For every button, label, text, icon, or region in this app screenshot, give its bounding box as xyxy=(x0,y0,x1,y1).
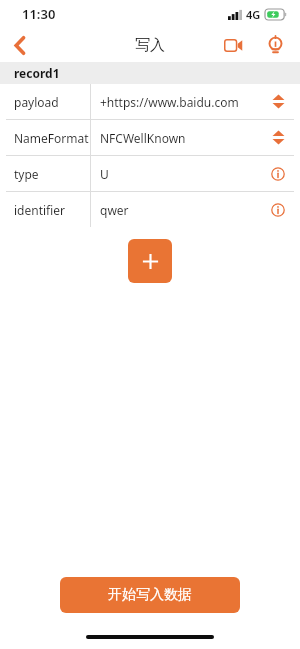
staticText: 11:30 xyxy=(22,5,56,23)
staticText: 开始写入数据 xyxy=(108,586,192,604)
staticText: NFCWellKnown xyxy=(100,130,186,146)
button[interactable]: 开始写入数据 xyxy=(60,577,240,613)
staticText: U xyxy=(100,166,109,182)
button[interactable]: payload xyxy=(6,84,294,119)
staticText: type xyxy=(14,166,39,182)
staticText: identifier xyxy=(14,202,66,218)
staticText: 4G xyxy=(246,7,261,22)
button[interactable]: Info xyxy=(262,156,294,191)
button[interactable]: Tips xyxy=(258,28,292,62)
button[interactable]: Video xyxy=(216,28,250,62)
button[interactable]: Info xyxy=(262,192,294,227)
staticText: 写入 xyxy=(135,36,165,55)
button[interactable]: Back xyxy=(0,28,40,62)
staticText: record1 xyxy=(14,65,60,81)
button[interactable]: identifier xyxy=(6,192,294,227)
staticText: NameFormat xyxy=(14,130,89,146)
button[interactable]: NameFormat xyxy=(6,120,294,155)
button[interactable]: Add record xyxy=(128,239,172,283)
button[interactable]: Select option xyxy=(262,120,294,155)
staticText: +https://www.baidu.com xyxy=(100,94,239,110)
button[interactable]: Select option xyxy=(262,84,294,119)
staticText: qwer xyxy=(100,202,129,218)
button[interactable]: type xyxy=(6,156,294,191)
staticText: payload xyxy=(14,94,59,110)
